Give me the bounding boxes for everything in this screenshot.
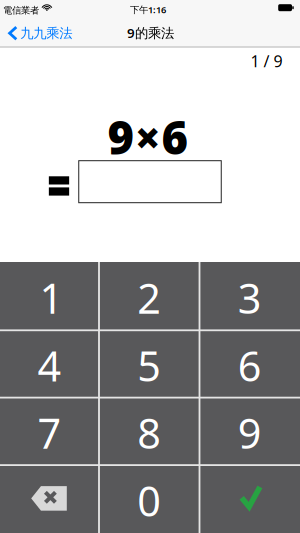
button[interactable]: 5 xyxy=(100,332,199,399)
staticText: 電信業者 xyxy=(3,5,39,16)
staticText: 2 xyxy=(137,270,161,325)
staticText: 1 / 9 xyxy=(250,50,282,72)
button[interactable]: 3 xyxy=(200,264,299,331)
button[interactable]: 2 xyxy=(100,264,199,331)
staticText: 九九乘法 xyxy=(20,25,72,41)
staticText: 8 xyxy=(137,405,161,460)
staticText: 9 xyxy=(238,405,262,460)
button[interactable] xyxy=(0,465,99,533)
button[interactable]: 1 xyxy=(2,264,101,331)
staticText: 3 xyxy=(238,270,262,325)
button[interactable]: 7 xyxy=(0,399,99,467)
staticText: 7 xyxy=(37,405,61,460)
button[interactable]: 0 xyxy=(100,467,199,533)
button[interactable]: 4 xyxy=(0,332,99,399)
button[interactable]: 6 xyxy=(200,332,299,399)
staticText: 9的乘法 xyxy=(127,24,174,42)
button[interactable]: 8 xyxy=(100,399,199,467)
button[interactable]: 九九乘法 xyxy=(8,25,72,41)
button[interactable] xyxy=(199,465,300,533)
staticText: 1 xyxy=(40,270,64,325)
button[interactable]: 9 xyxy=(200,399,299,467)
staticText: 下午1:16 xyxy=(130,3,166,16)
staticText: 6 xyxy=(238,338,262,393)
staticText: 5 xyxy=(137,338,161,393)
staticText: 4 xyxy=(37,338,61,393)
button[interactable] xyxy=(79,161,221,203)
staticText: 9×6 xyxy=(107,107,188,167)
staticText: 0 xyxy=(137,473,161,528)
